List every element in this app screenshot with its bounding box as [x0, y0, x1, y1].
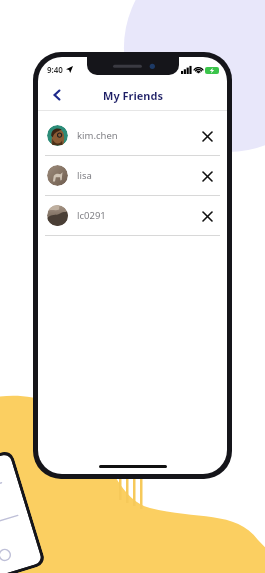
button[interactable]: lc0291: [38, 196, 227, 235]
button[interactable]: Back: [44, 82, 70, 108]
button[interactable]: kim.chen: [38, 116, 227, 155]
staticText: kim.chen: [77, 129, 118, 142]
staticText: lisa: [77, 169, 92, 182]
staticText: lc0291: [77, 209, 106, 222]
staticText: 9:40: [47, 64, 63, 75]
staticText: My Friends: [103, 88, 163, 103]
button[interactable]: Remove kim.chen: [196, 125, 218, 147]
button[interactable]: Remove lisa: [196, 165, 218, 187]
button[interactable]: Remove lc0291: [196, 205, 218, 227]
button[interactable]: lisa: [38, 156, 227, 195]
